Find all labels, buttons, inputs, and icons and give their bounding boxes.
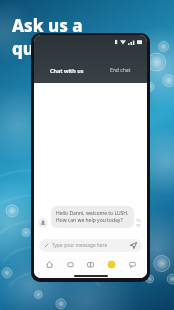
staticText: 11:17: [136, 218, 141, 228]
other: Attach: [44, 243, 49, 248]
button[interactable]: Chat with us: [42, 64, 92, 77]
staticText: Type your message here: [52, 242, 108, 249]
button[interactable]: Attach: [39, 239, 142, 252]
staticText: question: [12, 37, 88, 60]
button[interactable]: Gift card: [84, 258, 96, 270]
button[interactable]: Account: [105, 258, 117, 270]
staticText: Hello Danni, welcome to LUSH. How can we…: [56, 210, 129, 224]
staticText: End chat: [110, 67, 131, 74]
staticText: Ask us a: [12, 14, 83, 37]
button[interactable]: End chat: [102, 64, 139, 77]
staticText: Chat with us: [50, 67, 84, 74]
button[interactable]: Chat: [126, 258, 138, 270]
button[interactable]: Send: [130, 242, 137, 249]
button[interactable]: Shop: [64, 258, 76, 270]
button[interactable]: Home: [43, 258, 55, 270]
